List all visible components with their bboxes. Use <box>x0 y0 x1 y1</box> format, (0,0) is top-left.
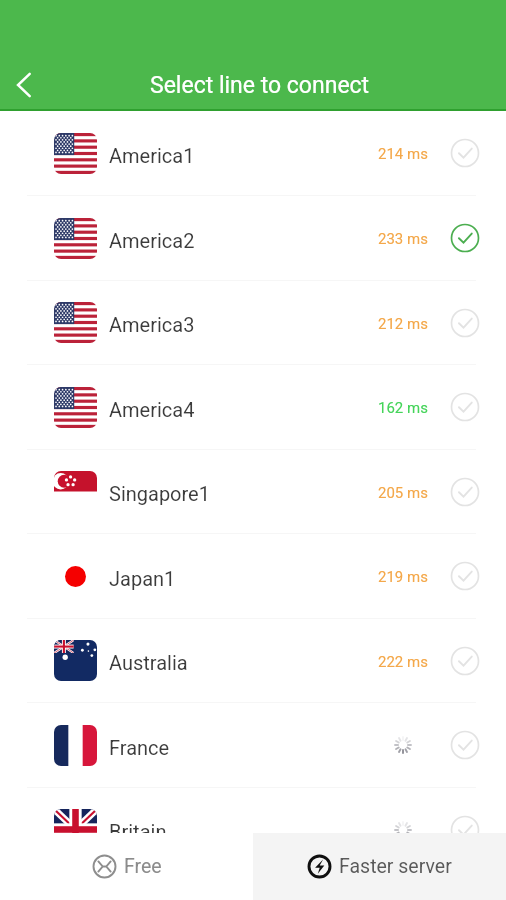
staticText: 212 ms <box>378 315 428 333</box>
staticText: 222 ms <box>378 653 428 671</box>
button[interactable]: Singapore1 <box>0 450 506 533</box>
button[interactable]: Select server <box>450 815 480 845</box>
staticText: Japan1 <box>109 567 176 590</box>
staticText: America3 <box>109 313 195 336</box>
button[interactable]: Selected server <box>450 223 480 253</box>
button[interactable]: Select server <box>450 561 480 591</box>
button[interactable]: Back <box>1 62 47 108</box>
button[interactable]: France <box>0 703 506 787</box>
staticText: 214 ms <box>378 145 428 163</box>
staticText: France <box>109 736 170 759</box>
button[interactable]: Select server <box>450 392 480 422</box>
staticText: Australia <box>109 651 188 674</box>
staticText: 233 ms <box>378 230 428 248</box>
staticText: America2 <box>109 229 195 252</box>
staticText: 205 ms <box>378 484 428 502</box>
staticText: Select line to connect <box>150 72 370 99</box>
button[interactable]: Select server <box>450 730 480 760</box>
button[interactable]: America3 <box>0 281 506 364</box>
button[interactable]: Japan1 <box>0 534 506 618</box>
button[interactable]: Select server <box>450 477 480 507</box>
button[interactable]: Select server <box>450 308 480 338</box>
button[interactable]: Select server <box>450 138 480 168</box>
staticText: America1 <box>109 144 195 167</box>
button[interactable]: America1 <box>0 111 506 195</box>
staticText: 219 ms <box>378 568 428 586</box>
staticText: Singapore1 <box>109 482 210 505</box>
button[interactable]: Free <box>0 833 253 900</box>
staticText: America4 <box>109 398 195 421</box>
staticText: Free <box>124 855 162 878</box>
button[interactable]: Faster server <box>253 833 506 900</box>
staticText: 162 ms <box>378 399 428 417</box>
button[interactable]: America2 <box>0 196 506 280</box>
button[interactable]: Select server <box>450 646 480 676</box>
button[interactable]: Britain <box>0 788 506 871</box>
button[interactable]: Australia <box>0 619 506 702</box>
staticText: Britain <box>109 820 167 843</box>
staticText: Faster server <box>339 855 452 878</box>
button[interactable]: America4 <box>0 365 506 449</box>
